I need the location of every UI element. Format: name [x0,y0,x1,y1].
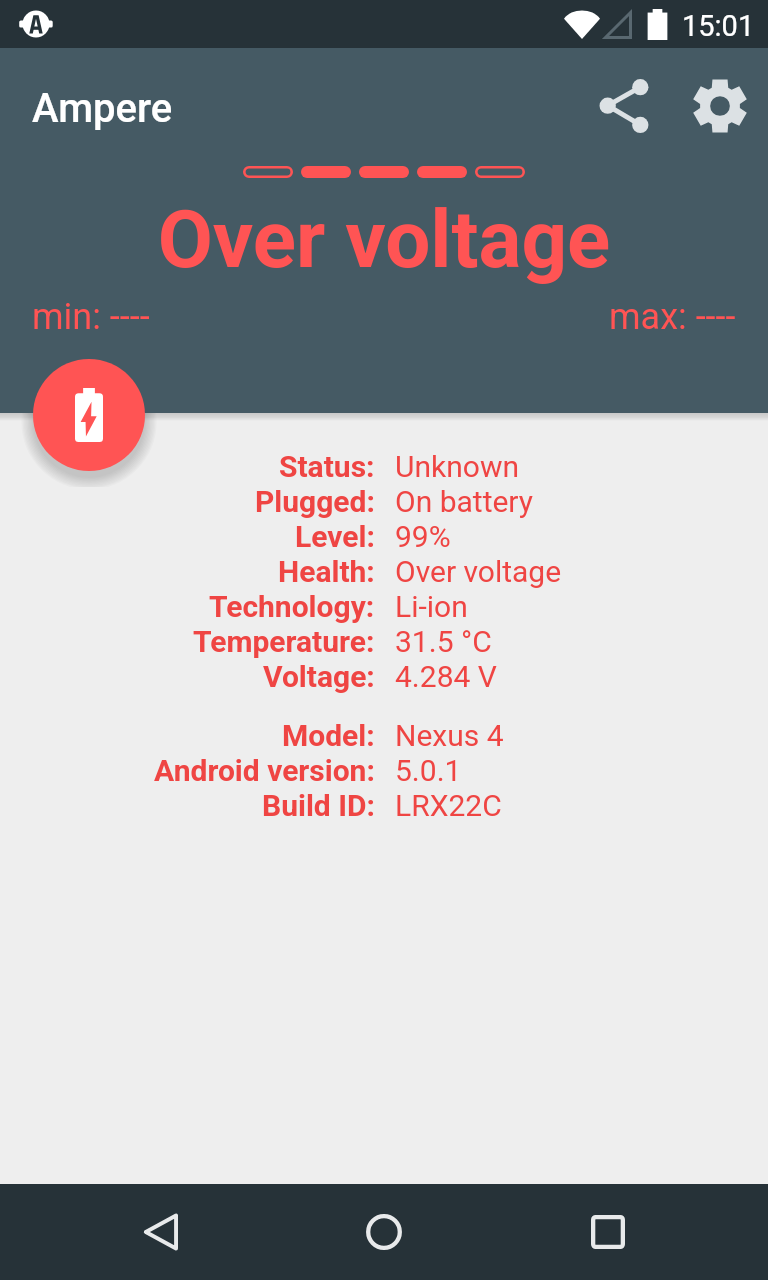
staticText: Nexus 4 [395,718,504,753]
button[interactable]: Measure [33,359,145,471]
staticText: Status: [279,449,375,484]
staticText: Over voltage [395,554,562,589]
staticText: min: ---- [32,296,150,338]
staticText: 31.5 °C [395,624,492,659]
staticText: Temperature: [193,624,375,659]
staticText: Ampere [32,85,173,132]
staticText: Voltage: [263,659,375,694]
button[interactable]: Recent apps [560,1184,656,1280]
staticText: On battery [395,484,533,519]
staticText: LRX22C [395,788,502,823]
staticText: Plugged: [255,484,375,519]
button[interactable]: Back [112,1184,208,1280]
staticText: 15:01 [682,9,755,43]
staticText: Android version: [154,753,375,788]
staticText: Build ID: [262,788,375,823]
staticText: 99% [395,519,451,554]
button[interactable]: Home [336,1184,432,1280]
button[interactable]: Settings [672,60,768,156]
staticText: Over voltage [0,193,768,287]
staticText: Unknown [395,449,520,484]
staticText: Model: [282,718,375,753]
staticText: max: ---- [609,296,736,338]
button[interactable]: Share [576,60,672,156]
staticText: 4.284 V [395,659,497,694]
staticText: Level: [295,519,375,554]
staticText: Li-ion [395,589,468,624]
staticText: Health: [278,554,375,589]
staticText: Technology: [209,589,375,624]
staticText: 5.0.1 [395,753,462,788]
